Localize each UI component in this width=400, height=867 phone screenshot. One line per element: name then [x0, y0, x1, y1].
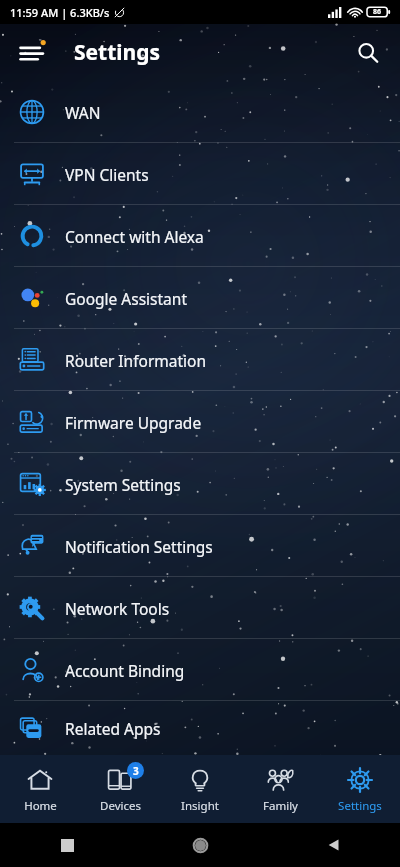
staticText: WAN	[65, 102, 101, 123]
staticText: Network Tools	[65, 598, 170, 619]
button[interactable]: Network Tools	[0, 577, 400, 639]
button[interactable]: Account Binding	[0, 639, 400, 701]
button[interactable]: VPN Clients	[0, 143, 400, 205]
staticText: Router Information	[65, 350, 207, 371]
staticText: Insight	[181, 798, 219, 814]
staticText: System Settings	[65, 474, 181, 495]
button[interactable]: Notification Settings	[0, 515, 400, 577]
button[interactable]: System Settings	[0, 453, 400, 515]
staticText: Connect with Alexa	[65, 226, 204, 247]
button[interactable]: Firmware Upgrade	[0, 391, 400, 453]
staticText: 11:59 AM | 6.3KB/s	[10, 5, 110, 20]
button[interactable]: Search	[344, 29, 392, 77]
button[interactable]: 3	[80, 755, 160, 823]
button[interactable]: Related Apps	[0, 701, 400, 755]
staticText: Account Binding	[65, 660, 185, 681]
button[interactable]: Router Information	[0, 329, 400, 391]
staticText: Settings	[338, 798, 382, 814]
staticText: Firmware Upgrade	[65, 412, 202, 433]
button[interactable]: Back	[267, 823, 400, 867]
staticText: Related Apps	[65, 718, 161, 739]
staticText: VPN Clients	[65, 164, 149, 185]
staticText: Notification Settings	[65, 536, 213, 557]
button[interactable]: Insight	[160, 755, 240, 823]
button[interactable]: Recent apps	[0, 823, 134, 867]
button[interactable]: Family	[240, 755, 320, 823]
staticText: Google Assistant	[65, 288, 187, 309]
staticText: Family	[263, 798, 298, 814]
button[interactable]: WAN	[0, 81, 400, 143]
button[interactable]: Settings	[320, 755, 400, 823]
staticText: 86	[373, 7, 382, 17]
button[interactable]: Menu	[8, 29, 56, 77]
staticText: Home	[24, 798, 57, 814]
button[interactable]: Connect with Alexa	[0, 205, 400, 267]
button[interactable]: Home	[0, 755, 80, 823]
button[interactable]: Google Assistant	[0, 267, 400, 329]
button[interactable]: Home	[134, 823, 267, 867]
staticText: Devices	[100, 798, 141, 814]
staticText: Settings	[74, 38, 161, 67]
staticText: 3	[133, 764, 139, 778]
